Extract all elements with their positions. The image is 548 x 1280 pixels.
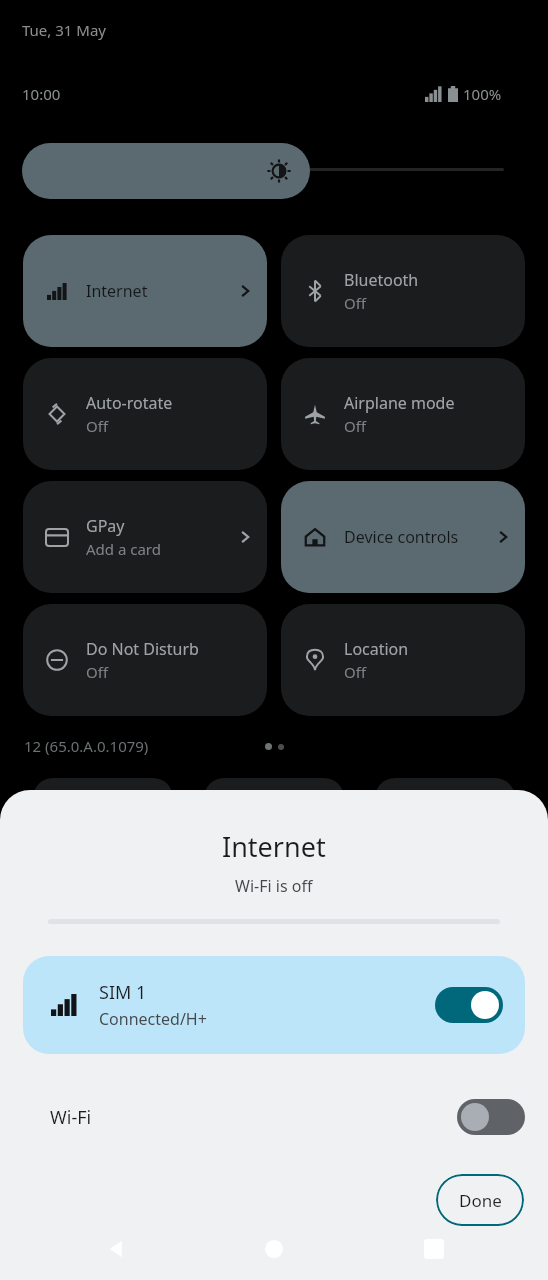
staticText: Auto-rotate	[86, 392, 173, 414]
staticText: Internet	[86, 280, 148, 302]
staticText: Internet	[222, 828, 326, 865]
button[interactable]: SIM 1 toggle	[435, 987, 503, 1023]
button[interactable]: Home	[263, 1238, 285, 1260]
staticText: Add a card	[86, 539, 161, 559]
button[interactable]: Wi-Fi toggle	[457, 1099, 525, 1135]
button[interactable]: Wi-Fi	[0, 1086, 548, 1148]
staticText: Off	[86, 416, 109, 436]
staticText: 12 (65.0.A.0.1079)	[24, 736, 149, 756]
button[interactable]: Back	[106, 1238, 128, 1260]
staticText: Wi-Fi	[50, 1105, 457, 1130]
button[interactable]: Airplane mode	[281, 358, 525, 470]
button[interactable]: Device controls	[281, 481, 525, 593]
staticText: 10:00	[22, 84, 61, 104]
button[interactable]: Do Not Disturb	[23, 604, 267, 716]
button[interactable]: Bluetooth	[281, 235, 525, 347]
staticText: Off	[86, 662, 109, 682]
staticText: Bluetooth	[344, 269, 419, 291]
staticText: Done	[459, 1189, 502, 1212]
button[interactable]: Location	[281, 604, 525, 716]
button[interactable]: Auto-rotate	[23, 358, 267, 470]
staticText: Off	[344, 416, 367, 436]
staticText: Tue, 31 May	[22, 20, 106, 40]
staticText: Off	[344, 293, 367, 313]
staticText: Off	[344, 662, 367, 682]
staticText: Airplane mode	[344, 392, 455, 414]
button[interactable]: Done	[436, 1174, 524, 1226]
staticText: Wi-Fi is off	[235, 875, 313, 897]
staticText: GPay	[86, 515, 125, 537]
staticText: Location	[344, 638, 409, 660]
staticText: SIM 1	[99, 980, 147, 1005]
staticText: Connected/H+	[99, 1008, 207, 1030]
button[interactable]: Brightness	[22, 143, 310, 199]
button[interactable]: SIM 1	[23, 956, 525, 1054]
button[interactable]: GPay	[23, 481, 267, 593]
button[interactable]: Internet	[23, 235, 267, 347]
staticText: Device controls	[344, 526, 459, 548]
staticText: 100%	[463, 84, 502, 104]
staticText: Do Not Disturb	[86, 638, 199, 660]
